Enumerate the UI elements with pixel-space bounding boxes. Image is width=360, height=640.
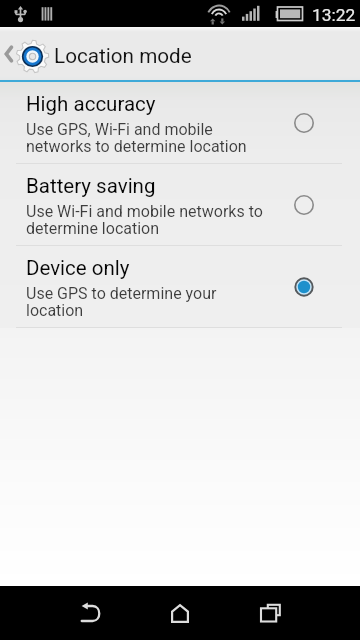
button[interactable]: High accuracy <box>0 82 360 163</box>
staticText: High accuracy <box>26 92 156 116</box>
staticText: Use GPS to determine your location <box>26 284 217 320</box>
button[interactable]: Home <box>150 586 210 640</box>
staticText: Use Wi-Fi and mobile networks to determi… <box>26 202 263 238</box>
button[interactable]: Device only <box>0 246 360 327</box>
button[interactable]: Back <box>61 586 121 640</box>
staticText: Battery saving <box>26 174 156 198</box>
staticText: Location mode <box>54 44 192 68</box>
staticText: Device only <box>26 256 130 280</box>
button[interactable]: Battery saving <box>0 164 360 245</box>
button[interactable]: Recent apps <box>240 586 300 640</box>
button[interactable]: Navigate up <box>0 27 52 80</box>
staticText: 13:22 <box>312 5 356 25</box>
staticText: Use GPS, Wi-Fi and mobile networks to de… <box>26 120 247 156</box>
